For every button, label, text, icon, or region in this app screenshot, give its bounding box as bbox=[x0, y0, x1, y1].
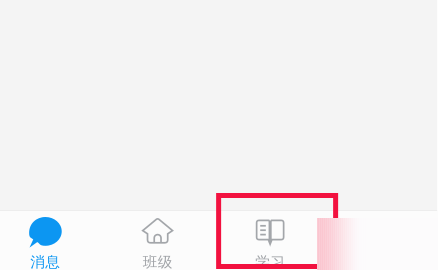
staticText: 班级 bbox=[143, 253, 173, 270]
button[interactable]: 学习 bbox=[214, 211, 326, 270]
staticText: 学习 bbox=[255, 253, 285, 270]
button[interactable]: 消息 bbox=[0, 211, 101, 270]
button[interactable]: 班级 bbox=[101, 211, 214, 270]
staticText: 消息 bbox=[30, 253, 60, 270]
button[interactable]: 我的 bbox=[326, 211, 438, 270]
